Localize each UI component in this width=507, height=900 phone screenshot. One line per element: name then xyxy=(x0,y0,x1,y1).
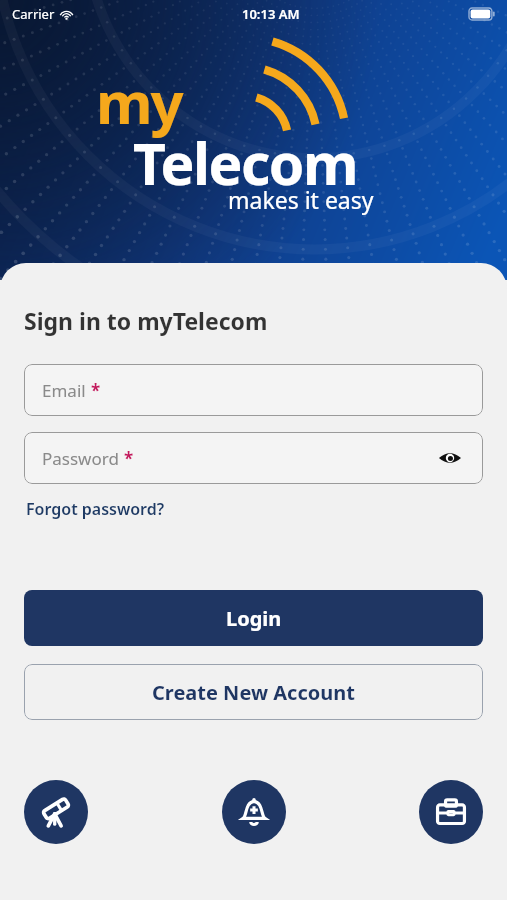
staticText: Carrier xyxy=(12,5,55,23)
button[interactable]: Notifications xyxy=(222,780,286,844)
staticText: Password xyxy=(42,447,119,470)
button[interactable]: Forgot password? xyxy=(24,494,167,524)
button[interactable]: Password xyxy=(24,432,483,484)
button[interactable]: Email xyxy=(24,364,483,416)
staticText: Email xyxy=(42,379,86,402)
button[interactable]: Business xyxy=(419,780,483,844)
button[interactable]: Explore xyxy=(24,780,88,844)
staticText: * xyxy=(124,447,134,470)
staticText: my xyxy=(96,62,182,141)
staticText: Login xyxy=(226,605,282,632)
staticText: makes it easy xyxy=(228,184,374,215)
staticText: Telecom xyxy=(133,124,358,202)
staticText: Sign in to myTelecom xyxy=(24,305,268,336)
button[interactable]: Create New Account xyxy=(24,664,483,720)
button[interactable]: Show password xyxy=(435,443,465,473)
staticText: Create New Account xyxy=(152,679,355,706)
staticText: 10:13 AM xyxy=(242,5,300,23)
button[interactable]: Login xyxy=(24,590,483,646)
staticText: Forgot password? xyxy=(26,498,165,520)
staticText: * xyxy=(91,379,101,402)
